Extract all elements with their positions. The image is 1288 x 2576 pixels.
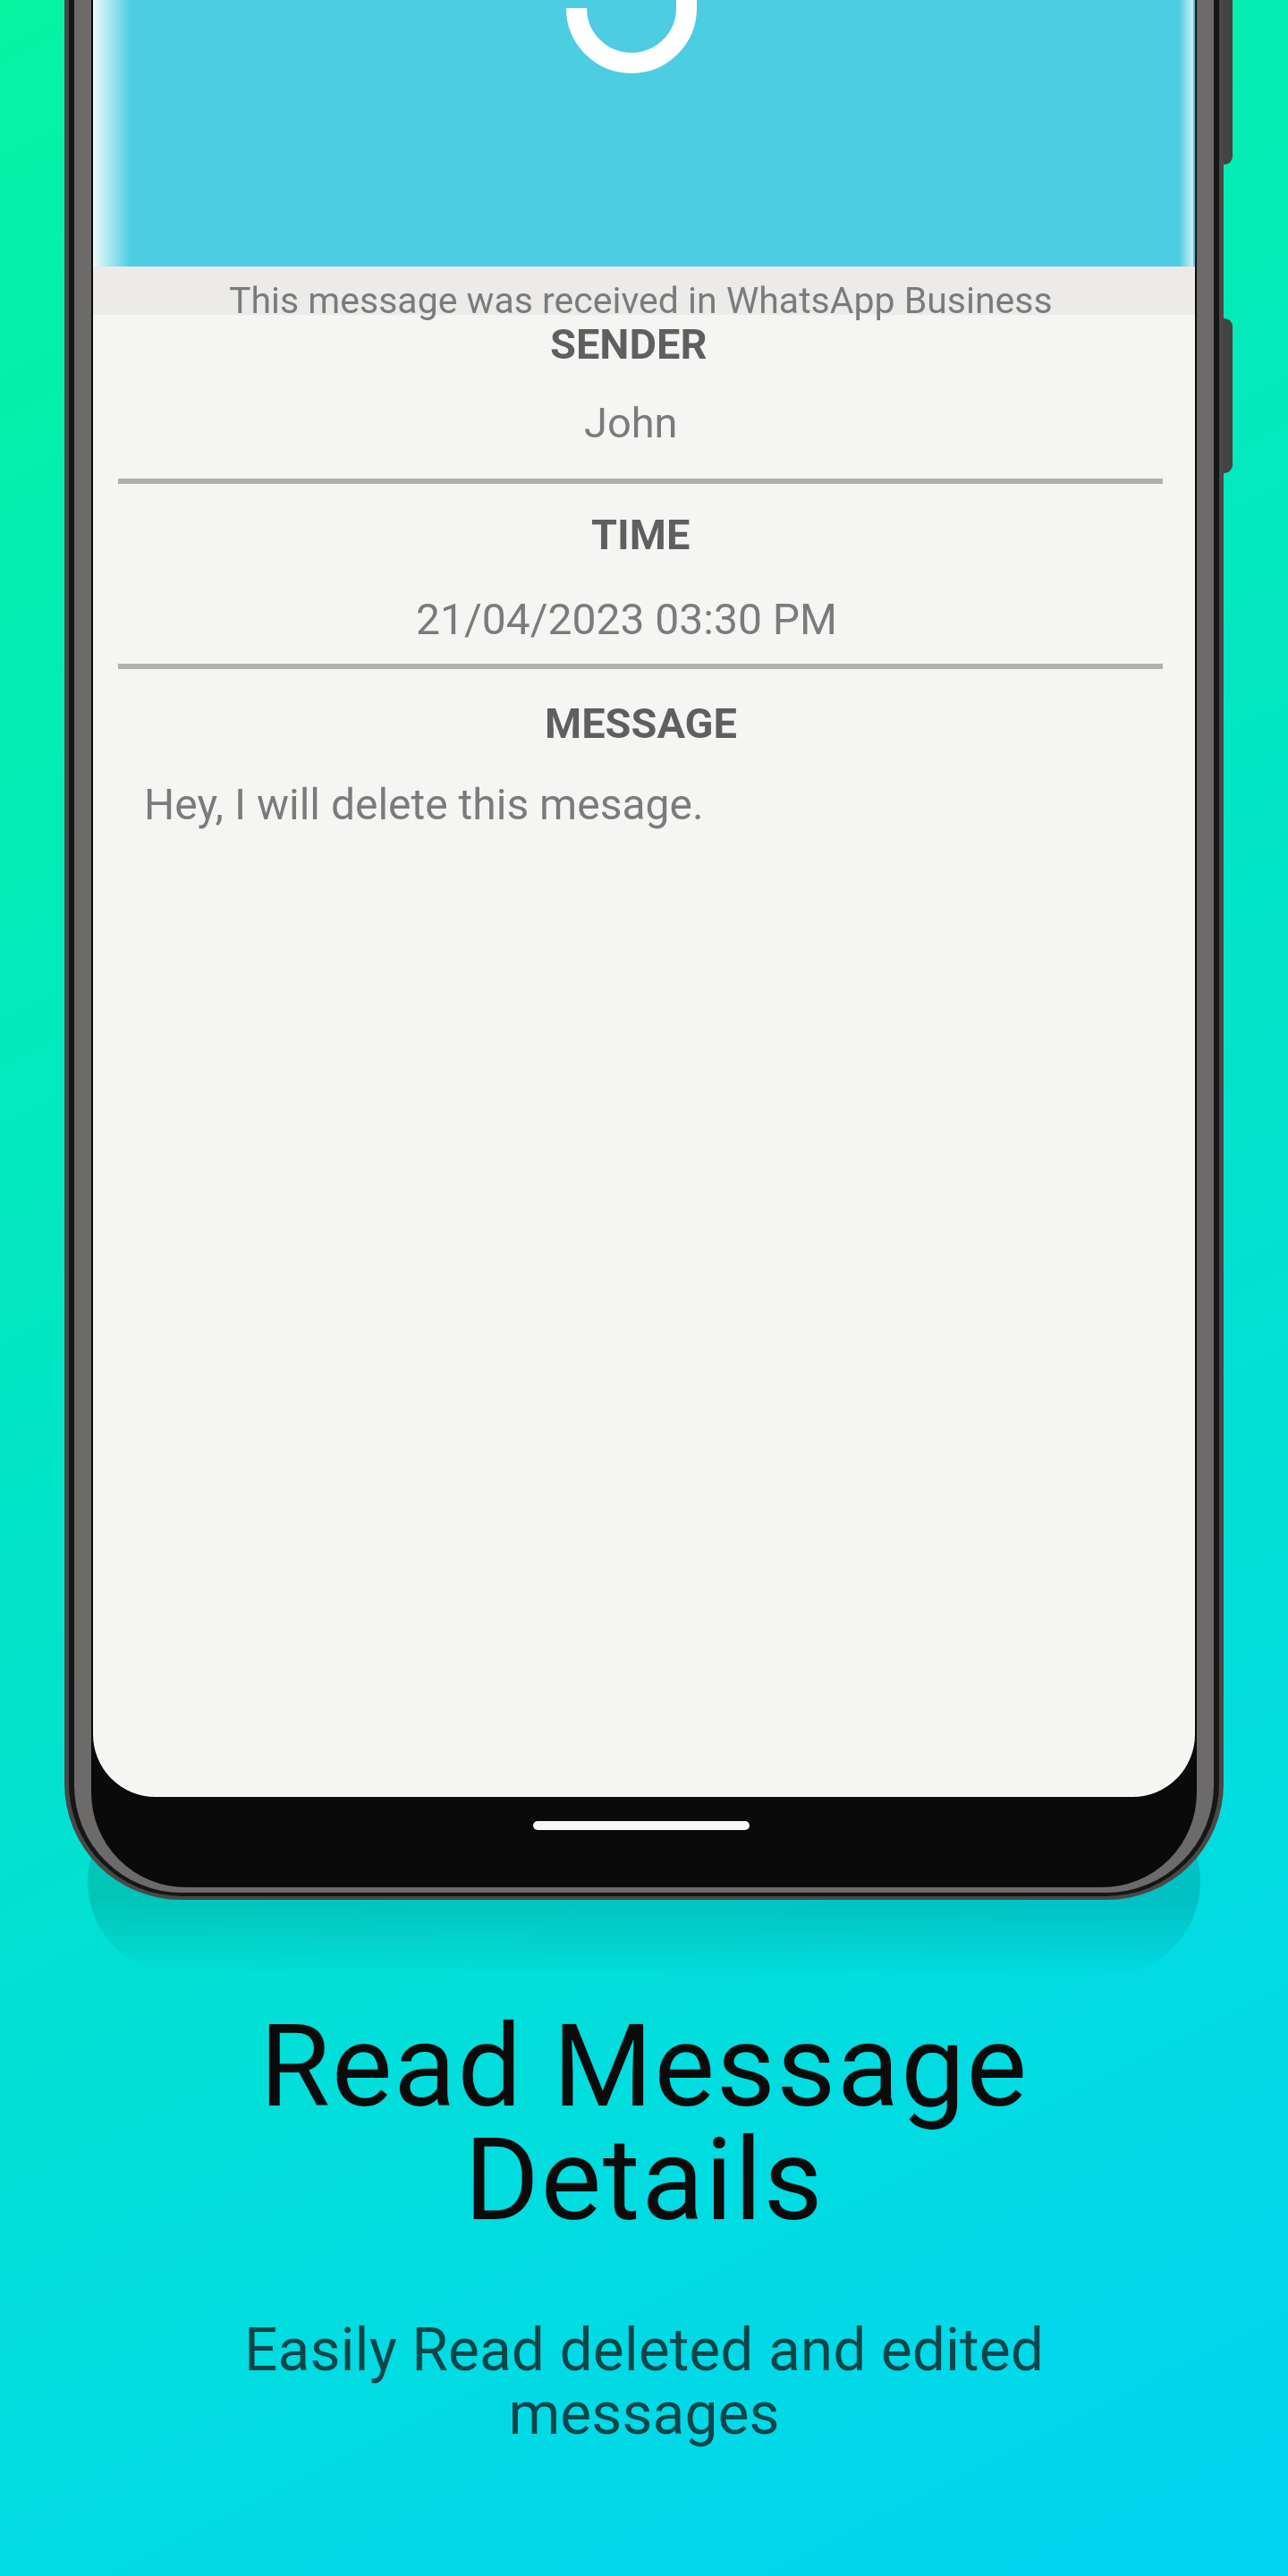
staticText: 21/04/2023 03:30 PM <box>416 594 837 644</box>
staticText: This message was received in WhatsApp Bu… <box>229 279 1053 322</box>
staticText: Easily Read deleted and edited messages <box>244 2316 1044 2448</box>
staticText: SENDER <box>550 319 708 369</box>
staticText: MESSAGE <box>545 699 738 748</box>
staticText: John <box>584 398 678 447</box>
staticText: TIME <box>591 510 691 559</box>
staticText: Read Message Details <box>259 1999 1029 2247</box>
staticText: Hey, I will delete this mesage. <box>144 779 704 829</box>
